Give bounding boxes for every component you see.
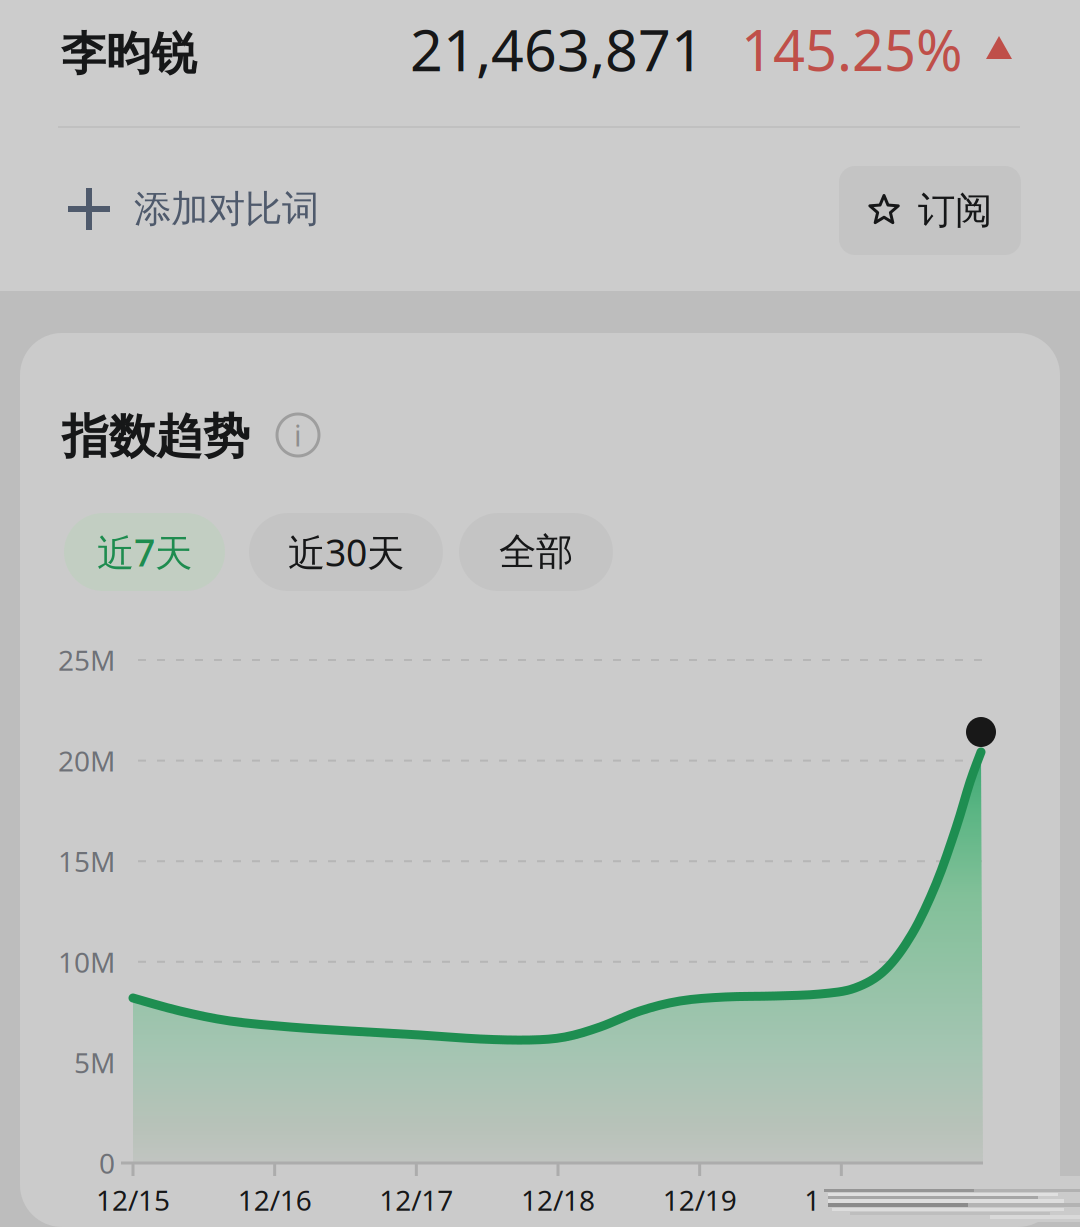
staticText: 10M <box>58 943 115 980</box>
button[interactable]: About index trend <box>277 414 319 456</box>
button[interactable]: 近30天 <box>249 513 443 591</box>
staticText: 12/17 <box>379 1181 453 1219</box>
staticText: 指数趋势 <box>62 408 250 465</box>
button[interactable]: 订阅 <box>839 166 1021 255</box>
staticText: 添加对比词 <box>134 186 319 232</box>
button[interactable]: 全部 <box>459 513 613 591</box>
staticText: 12/19 <box>663 1181 737 1219</box>
staticText: 0 <box>99 1144 115 1182</box>
staticText: 25M <box>58 641 115 679</box>
staticText: 全部 <box>499 529 573 575</box>
staticText: 李昀锐 <box>61 26 196 82</box>
staticText: 订阅 <box>918 188 992 233</box>
staticText: 近7天 <box>97 527 192 577</box>
button[interactable]: 近7天 <box>64 513 225 591</box>
staticText: 12/18 <box>521 1181 595 1219</box>
staticText: 145.25% <box>741 12 963 86</box>
staticText: 近30天 <box>288 527 404 577</box>
staticText: 12/15 <box>96 1181 170 1219</box>
staticText: 20M <box>58 742 115 779</box>
staticText: 15M <box>58 843 115 880</box>
staticText: 21,463,871 <box>410 11 704 87</box>
staticText: 12/20 <box>804 1181 878 1219</box>
button[interactable]: 添加对比词 <box>50 161 339 257</box>
staticText: 5M <box>74 1044 115 1081</box>
staticText: i <box>294 415 302 454</box>
staticText: 12/16 <box>238 1181 312 1219</box>
